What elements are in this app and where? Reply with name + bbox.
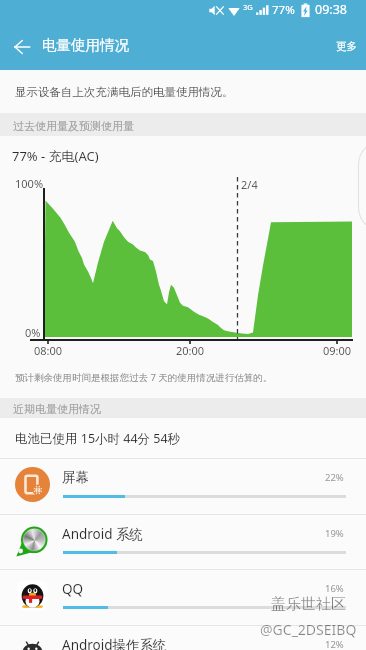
button[interactable]: QQ <box>0 569 366 625</box>
staticText: 盖乐世社区 <box>271 595 346 614</box>
staticText: 100% <box>15 176 44 191</box>
staticText: 近期电量使用情况 <box>13 402 101 416</box>
button[interactable]: Android操作系统 <box>0 625 366 650</box>
staticText: 77% <box>272 2 295 18</box>
staticText: 2/4 <box>241 177 258 192</box>
staticText: @GC_2DSEIBQ <box>260 620 357 639</box>
staticText: 0% <box>25 325 41 340</box>
staticText: 电池已使用 15小时 44分 54秒 <box>15 430 181 447</box>
staticText: 22% <box>325 471 344 484</box>
staticText: 过去使用量及预测使用量 <box>13 119 134 133</box>
staticText: 09:38 <box>315 1 347 18</box>
staticText: 19% <box>325 527 344 540</box>
button[interactable]: 屏幕 <box>0 458 366 514</box>
staticText: 20:00 <box>176 343 205 358</box>
staticText: Android 系统 <box>62 525 144 543</box>
staticText: 77% - 充电(AC) <box>12 147 99 165</box>
staticText: 09:00 <box>323 343 352 358</box>
staticText: 预计剩余使用时间是根据您过去 7 天的使用情况进行估算的。 <box>15 371 273 384</box>
staticText: 更多 <box>336 40 357 53</box>
staticText: Android操作系统 <box>62 636 167 650</box>
staticText: 电量使用情况 <box>42 36 129 54</box>
button[interactable]: Back <box>0 22 44 70</box>
staticText: QQ <box>62 580 84 598</box>
staticText: 12% <box>325 638 344 650</box>
staticText: 显示设备自上次充满电后的电量使用情况。 <box>15 85 234 99</box>
staticText: 3G <box>243 2 253 12</box>
button[interactable]: Android 系统 <box>0 514 366 570</box>
staticText: 屏幕 <box>62 469 89 486</box>
button[interactable]: 更多 <box>322 26 366 67</box>
staticText: 08:00 <box>34 343 63 358</box>
staticText: 16% <box>325 582 344 595</box>
